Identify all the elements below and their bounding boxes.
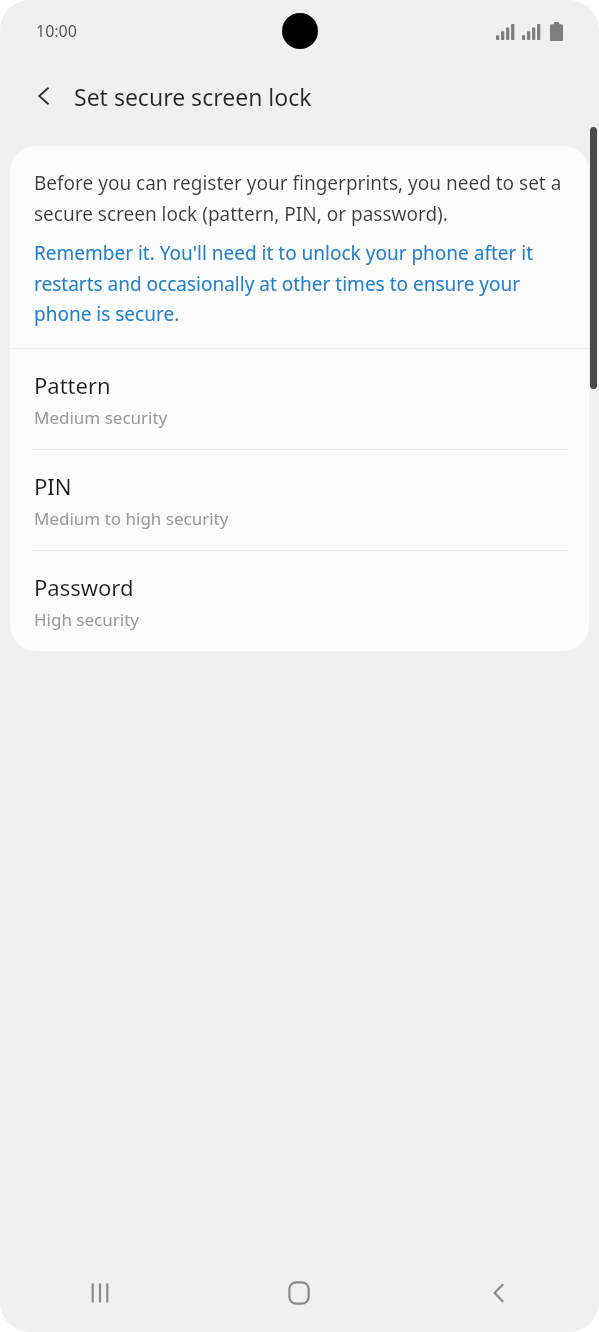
button[interactable]: PIN [10,450,589,550]
staticText: Medium to high security [34,507,229,530]
button[interactable]: Back [399,1254,599,1332]
staticText: Medium security [34,406,168,429]
button[interactable]: Back [20,72,68,120]
button[interactable]: Recent apps [0,1254,199,1332]
staticText: Remember it. You'll need it to unlock yo… [34,240,567,326]
button[interactable]: Pattern [10,349,589,449]
staticText: Pattern [34,370,111,400]
staticText: Before you can register your fingerprint… [34,170,567,226]
staticText: Password [34,572,134,602]
staticText: PIN [34,471,72,501]
staticText: Set secure screen lock [74,81,312,112]
staticText: 10:00 [36,20,77,42]
button[interactable]: Home [199,1254,399,1332]
staticText: High security [34,608,139,631]
button[interactable]: Password [10,551,589,651]
